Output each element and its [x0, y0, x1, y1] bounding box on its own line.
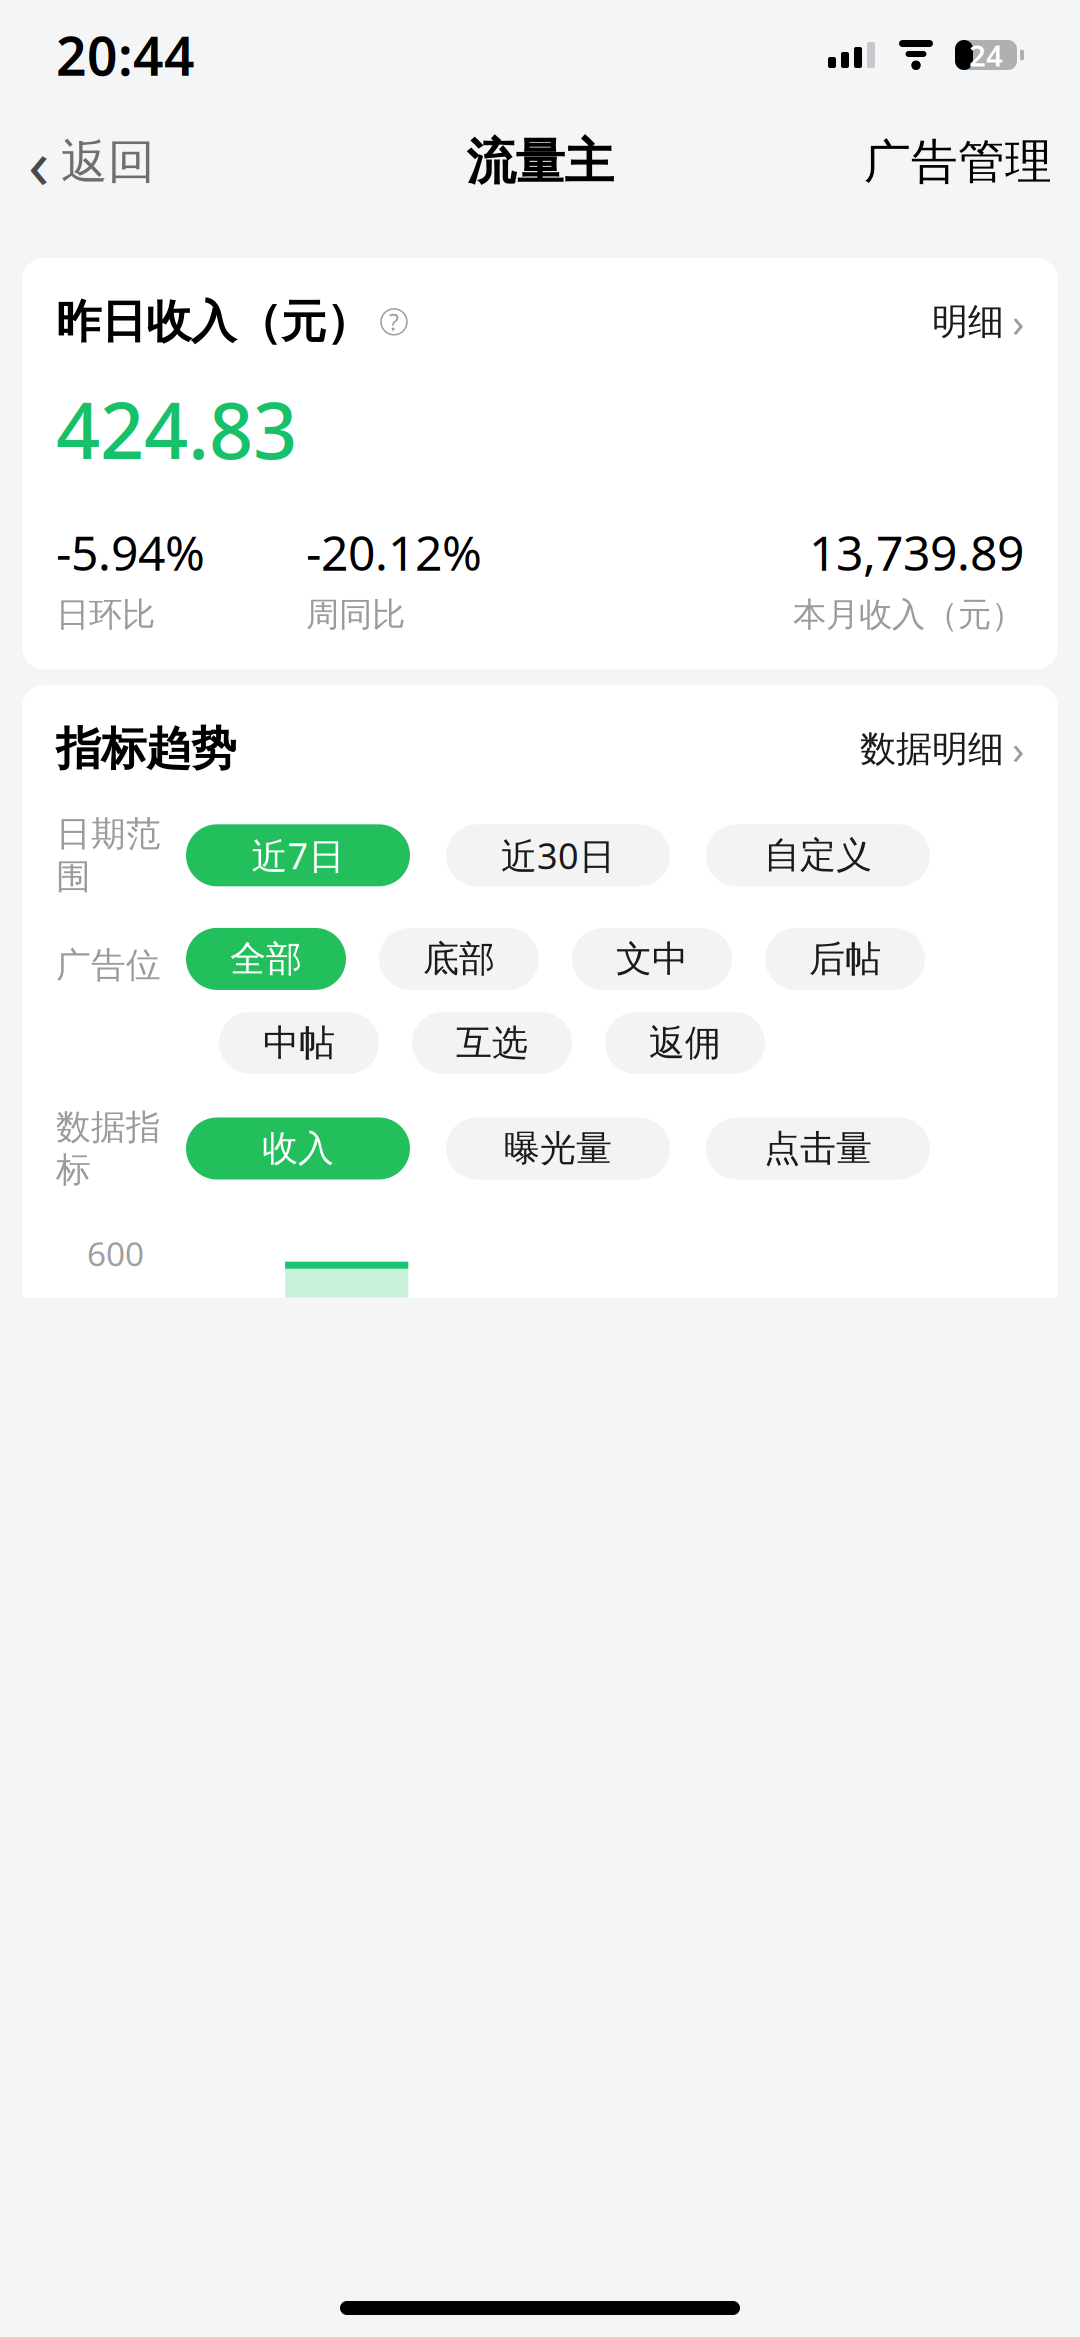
button[interactable]: 互选 — [412, 1012, 572, 1074]
staticText: 指标趋势 — [56, 721, 236, 777]
staticText: 文中 — [616, 937, 688, 981]
button[interactable]: 后帖 — [765, 928, 925, 990]
staticText: › — [1012, 722, 1024, 775]
staticText: 明细 — [932, 300, 1004, 344]
staticText: 本月收入（元） — [793, 594, 1024, 635]
staticText: 返佣 — [649, 1021, 721, 1065]
staticText: 24 — [969, 35, 1003, 74]
staticText: 600 — [87, 1231, 144, 1275]
staticText: ‹ — [28, 116, 49, 208]
staticText: 广告管理 — [864, 133, 1052, 191]
staticText: 互选 — [456, 1021, 528, 1065]
button[interactable]: ‹ — [28, 106, 155, 218]
button[interactable]: 中帖 — [219, 1012, 379, 1074]
staticText: 流量主 — [466, 132, 613, 192]
staticText: 昨日收入（元） — [56, 294, 371, 350]
button[interactable]: 数据明细 — [860, 722, 1024, 775]
staticText: -20.12% — [306, 520, 482, 584]
staticText: 数据指标 — [56, 1106, 161, 1191]
staticText: 自定义 — [764, 833, 872, 877]
staticText: 近7日 — [251, 831, 344, 879]
staticText: 日期范围 — [56, 813, 161, 898]
button[interactable]: 曝光量 — [446, 1117, 670, 1179]
button[interactable]: 近7日 — [186, 824, 410, 886]
staticText: 日环比 — [56, 594, 155, 635]
staticText: 424.83 — [56, 378, 297, 480]
button[interactable]: 返佣 — [605, 1012, 765, 1074]
staticText: 周同比 — [306, 594, 405, 635]
button[interactable]: 自定义 — [706, 824, 930, 886]
staticText: ? — [389, 307, 399, 337]
button[interactable]: 近30日 — [446, 824, 670, 886]
staticText: 全部 — [230, 937, 302, 981]
staticText: 后帖 — [809, 937, 881, 981]
button[interactable]: 明细 — [932, 295, 1024, 348]
staticText: 广告位 — [56, 944, 161, 986]
staticText: 数据明细 — [860, 727, 1004, 771]
staticText: 返回 — [61, 133, 155, 191]
staticText: 近30日 — [501, 831, 615, 879]
staticText: 中帖 — [263, 1021, 335, 1065]
staticText: › — [1012, 295, 1024, 348]
staticText: 点击量 — [764, 1126, 872, 1171]
staticText: 收入 — [262, 1126, 334, 1171]
button[interactable]: 全部 — [186, 928, 346, 990]
button[interactable]: 点击量 — [706, 1117, 930, 1179]
button[interactable]: 广告管理 — [864, 123, 1052, 201]
button[interactable]: 底部 — [379, 928, 539, 990]
staticText: 底部 — [423, 937, 495, 981]
staticText: 曝光量 — [504, 1126, 612, 1171]
button[interactable]: 文中 — [572, 928, 732, 990]
button[interactable]: 收入 — [186, 1117, 410, 1179]
staticText: 13,739.89 — [809, 520, 1024, 584]
staticText: -5.94% — [56, 520, 205, 584]
staticText: 20:44 — [56, 20, 195, 90]
